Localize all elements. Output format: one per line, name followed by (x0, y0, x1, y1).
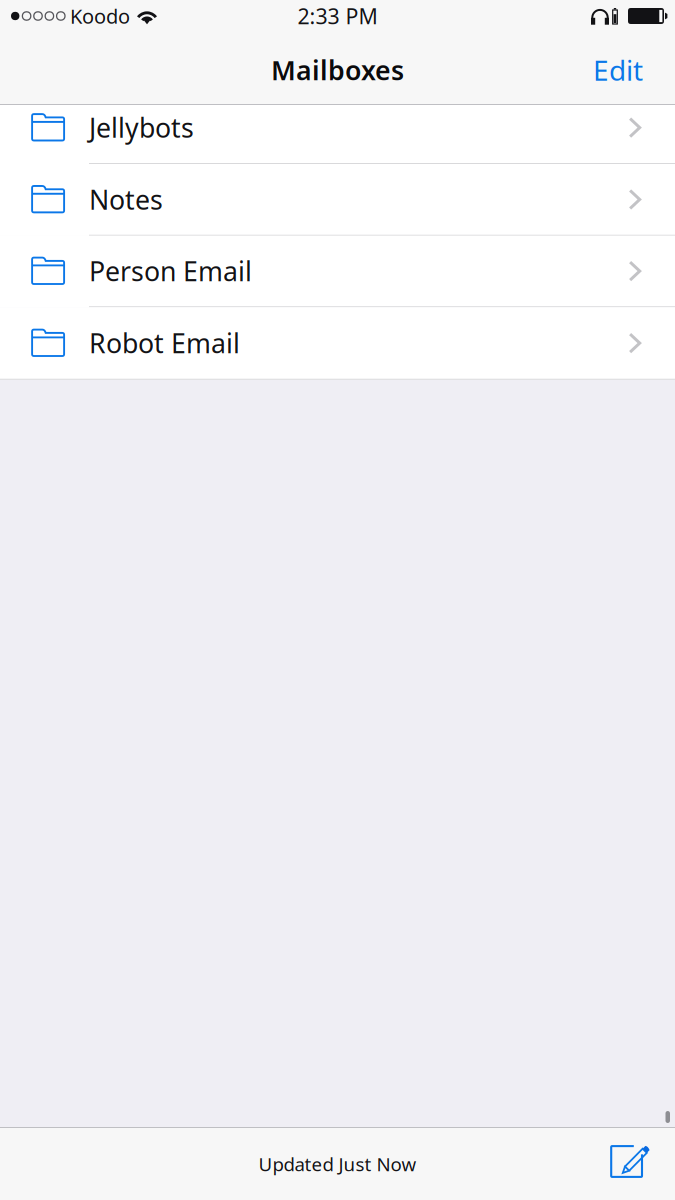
staticText: Robot Email (89, 325, 240, 361)
staticText: Edit (593, 51, 643, 89)
button[interactable]: Compose (598, 1135, 662, 1192)
staticText: 2:33 PM (297, 2, 377, 30)
button[interactable]: Edit (579, 41, 657, 99)
button[interactable]: Person Email (0, 236, 675, 307)
staticText: Person Email (89, 253, 252, 289)
button[interactable]: Notes (0, 164, 675, 236)
staticText: Updated Just Now (258, 1152, 416, 1176)
staticText: Jellybots (89, 110, 194, 145)
staticText: Mailboxes (271, 52, 404, 88)
staticText: Notes (89, 182, 163, 217)
button[interactable]: Jellybots (0, 105, 675, 164)
staticText: Koodo (70, 3, 130, 29)
button[interactable]: Robot Email (0, 307, 675, 380)
